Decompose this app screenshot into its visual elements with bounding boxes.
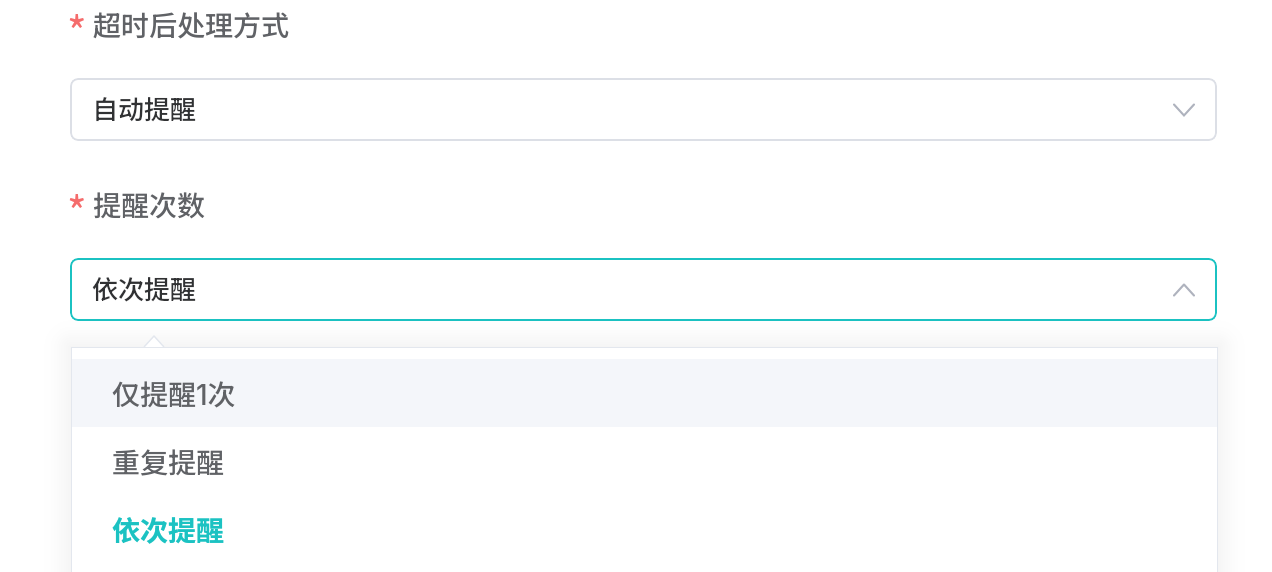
staticText: * <box>67 0 87 60</box>
other: Expand options <box>1167 93 1201 127</box>
button[interactable]: 自动提醒 <box>70 78 1217 141</box>
button[interactable]: 仅提醒1次 <box>71 359 1218 427</box>
staticText: 依次提醒 <box>112 509 225 550</box>
button[interactable]: 依次提醒 <box>70 258 1217 321</box>
staticText: 重复提醒 <box>112 441 225 482</box>
staticText: * <box>67 179 87 240</box>
staticText: 提醒次数 <box>93 184 206 225</box>
other: Collapse options <box>1167 273 1201 307</box>
staticText: 自动提醒 <box>92 89 197 127</box>
button[interactable]: 重复提醒 <box>71 427 1218 495</box>
staticText: 仅提醒1次 <box>112 373 236 414</box>
staticText: 超时后处理方式 <box>93 4 290 45</box>
staticText: 依次提醒 <box>92 269 197 307</box>
button[interactable]: 依次提醒 <box>71 495 1218 563</box>
